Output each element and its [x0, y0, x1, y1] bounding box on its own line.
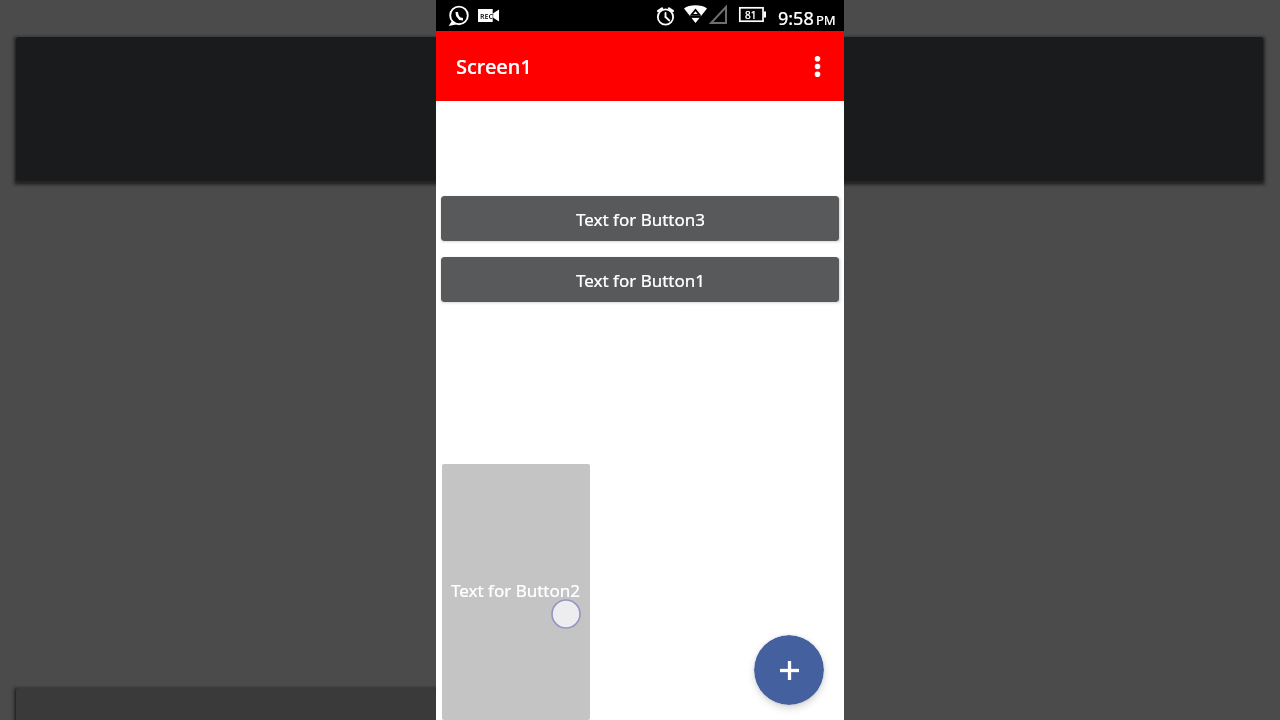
button[interactable]: Text for Button3 — [441, 196, 839, 241]
staticText: Text for Button1 — [576, 269, 705, 292]
staticText: Text for Button3 — [576, 208, 705, 231]
staticText: Screen1 — [456, 53, 532, 80]
staticText: REC — [480, 12, 494, 22]
button[interactable]: More options — [795, 44, 839, 88]
staticText: Text for Button2 — [451, 579, 580, 602]
button[interactable]: Add — [754, 635, 824, 705]
staticText: PM — [816, 11, 836, 29]
button[interactable]: Text for Button1 — [441, 257, 839, 302]
staticText: 81 — [745, 8, 757, 22]
staticText: 9:58 — [778, 6, 814, 31]
button[interactable]: Text for Button2 — [442, 464, 590, 720]
